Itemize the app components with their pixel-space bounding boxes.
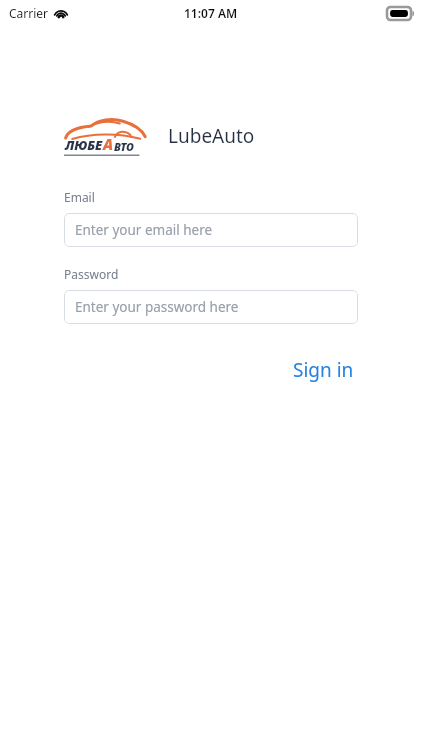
staticText: Email <box>64 189 95 205</box>
staticText: Password <box>64 266 119 282</box>
staticText: Enter your email here <box>75 221 213 239</box>
button[interactable]: Sign in <box>289 351 358 389</box>
button[interactable]: Enter your email here <box>64 213 358 247</box>
staticText: LubeAuto <box>168 123 255 149</box>
staticText: А <box>103 134 114 154</box>
staticText: Enter your password here <box>75 298 239 316</box>
button[interactable]: Enter your password here <box>64 290 358 324</box>
staticText: ЛЮБЕ <box>65 136 103 154</box>
staticText: Carrier <box>9 5 49 21</box>
other: Battery <box>387 7 414 20</box>
staticText: ВТО <box>114 139 134 154</box>
other: LubeAuto logo <box>64 116 146 156</box>
other: Wi-Fi <box>54 8 68 19</box>
staticText: 11:07 AM <box>184 5 238 21</box>
staticText: Sign in <box>293 357 354 383</box>
